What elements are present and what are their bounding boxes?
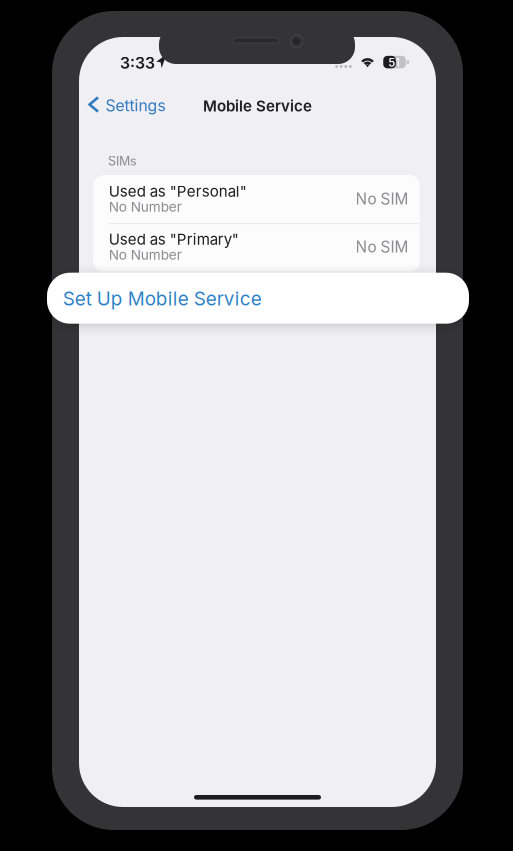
button[interactable]: Set Up Mobile Service	[47, 273, 469, 324]
staticText: Settings	[105, 96, 165, 115]
staticText: Used as "Personal"	[109, 182, 247, 200]
staticText: 51	[388, 56, 400, 70]
staticText: Set Up Mobile Service	[63, 287, 262, 310]
staticText: No SIM	[355, 238, 408, 256]
staticText: No SIM	[355, 190, 408, 208]
button[interactable]: Used as "Primary"	[93, 223, 419, 271]
button[interactable]: Used as "Personal"	[93, 175, 419, 223]
staticText: No Number	[109, 247, 182, 263]
staticText: No Number	[109, 199, 182, 215]
staticText: SIMs	[108, 153, 137, 169]
staticText: Used as "Primary"	[109, 230, 239, 248]
staticText: Mobile Service	[203, 97, 312, 115]
staticText: 3:33	[120, 53, 155, 72]
